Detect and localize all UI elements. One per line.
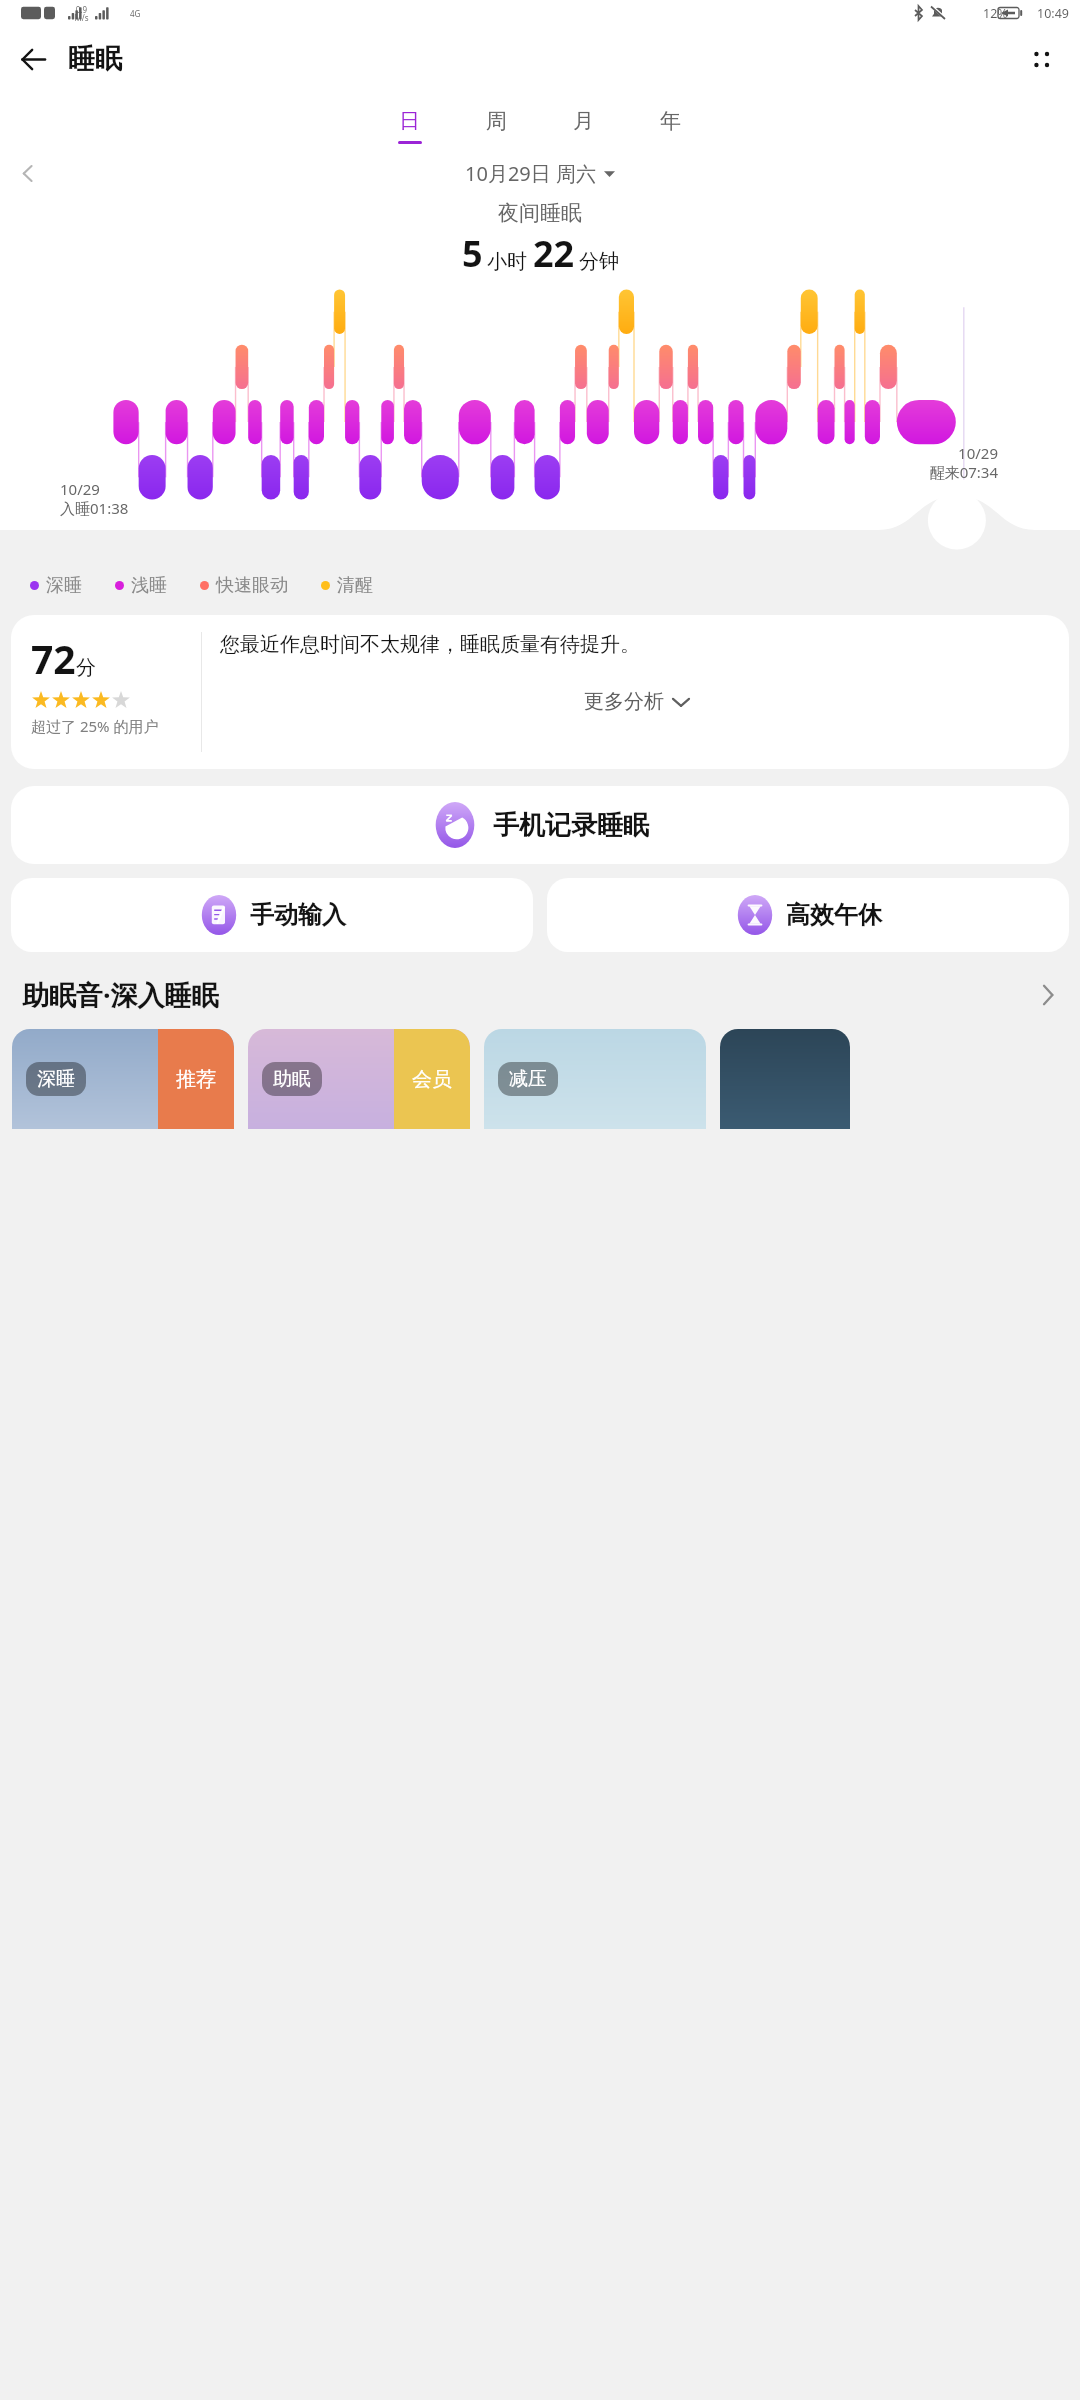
button[interactable]: 日 bbox=[366, 108, 453, 144]
staticText: 10:49 bbox=[1037, 5, 1069, 22]
staticText: 22 bbox=[533, 229, 575, 278]
staticText: 72 bbox=[31, 632, 76, 685]
staticText: 您最近作息时间不太规律，睡眠质量有待提升。 bbox=[220, 632, 640, 657]
staticText: 月 bbox=[573, 108, 594, 134]
button[interactable]: 会员 bbox=[248, 1029, 470, 1129]
staticText: 减压 bbox=[509, 1067, 547, 1091]
staticText: 睡眠 bbox=[68, 42, 122, 76]
button[interactable]: 手动输入 bbox=[11, 878, 533, 952]
staticText: 4G bbox=[130, 8, 141, 19]
button[interactable]: 月 bbox=[540, 108, 627, 144]
button[interactable]: 减压 bbox=[484, 1029, 706, 1129]
staticText: 日 bbox=[399, 108, 420, 134]
button[interactable]: 周 bbox=[453, 108, 540, 144]
staticText: 12% bbox=[983, 5, 1008, 22]
staticText: 手动输入 bbox=[250, 900, 346, 930]
staticText: 小时 bbox=[487, 249, 527, 274]
staticText: 浅睡 bbox=[131, 574, 167, 597]
staticText: 清醒 bbox=[337, 574, 373, 597]
staticText: 手机记录睡眠 bbox=[493, 809, 649, 842]
staticText: 10/29 入睡01:38 bbox=[60, 479, 129, 518]
staticText: 深睡 bbox=[37, 1067, 75, 1091]
staticText: 分 bbox=[76, 655, 96, 680]
button[interactable]: 高效午休 bbox=[547, 878, 1069, 952]
button[interactable]: 推荐 bbox=[12, 1029, 234, 1129]
staticText: 超过了 25% 的用户 bbox=[31, 716, 159, 736]
staticText: 深睡 bbox=[46, 574, 82, 597]
button[interactable]: 年 bbox=[627, 108, 714, 144]
staticText: 推荐 bbox=[176, 1067, 216, 1092]
staticText: 助眠音·深入睡眠 bbox=[22, 976, 219, 1013]
staticText: 分钟 bbox=[579, 249, 619, 274]
button[interactable]: Back bbox=[8, 34, 58, 84]
staticText: 更多分析 bbox=[584, 689, 664, 714]
staticText: 0.9 M/s bbox=[74, 4, 89, 23]
staticText: 10/29 醒来07:34 bbox=[929, 443, 998, 482]
staticText: 5 bbox=[462, 229, 483, 278]
button[interactable]: 助眠音·深入睡眠 bbox=[22, 976, 1058, 1013]
staticText: 10月29日 周六 bbox=[465, 160, 596, 186]
button[interactable] bbox=[720, 1029, 850, 1129]
staticText: 助眠 bbox=[273, 1067, 311, 1091]
button[interactable]: 10月29日 周六 bbox=[465, 160, 615, 186]
button[interactable]: 72 bbox=[11, 615, 1069, 769]
button[interactable]: 更多分析 bbox=[220, 689, 1053, 714]
button[interactable]: Previous day bbox=[8, 160, 48, 186]
staticText: 年 bbox=[660, 108, 681, 134]
staticText: 快速眼动 bbox=[216, 574, 288, 597]
button[interactable]: 手机记录睡眠 bbox=[11, 786, 1069, 864]
staticText: 周 bbox=[486, 108, 507, 134]
staticText: 夜间睡眠 bbox=[498, 200, 582, 226]
staticText: 高效午休 bbox=[786, 900, 882, 930]
button[interactable]: More options bbox=[1016, 34, 1066, 84]
staticText: 会员 bbox=[412, 1067, 452, 1092]
